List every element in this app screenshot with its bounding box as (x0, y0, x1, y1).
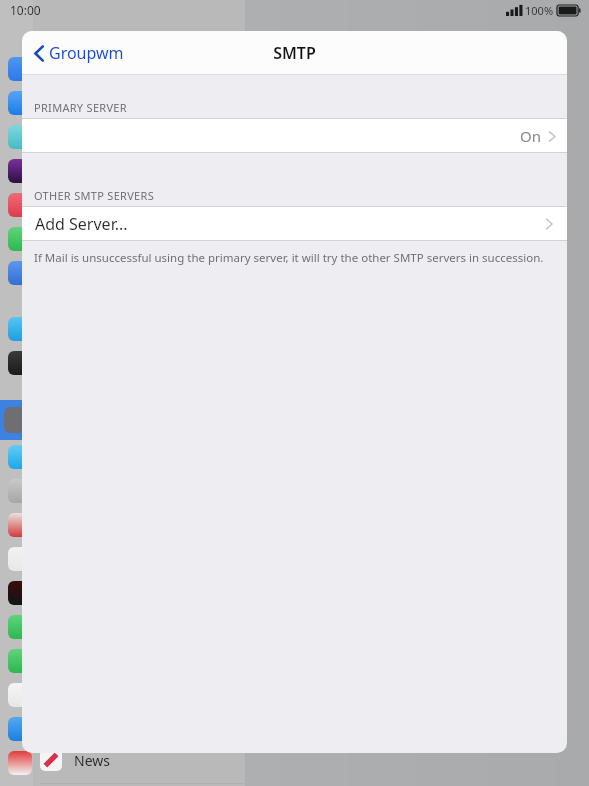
staticText: If Mail is unsuccessful using the primar… (34, 250, 544, 266)
staticText: SMTP (273, 42, 316, 64)
staticText: OTHER SMTP SERVERS (34, 188, 154, 203)
staticText: PRIMARY SERVER (34, 100, 127, 115)
staticText: On (520, 126, 541, 146)
staticText: Groupwm (49, 42, 124, 64)
button[interactable]: Groupwm (31, 38, 127, 68)
staticText: Add Server... (35, 213, 128, 235)
button[interactable]: On (22, 119, 567, 152)
staticText: News (74, 751, 110, 770)
staticText: 10:00 (10, 2, 41, 18)
button[interactable]: Add Server... (22, 207, 567, 240)
staticText: 100% (525, 3, 554, 18)
